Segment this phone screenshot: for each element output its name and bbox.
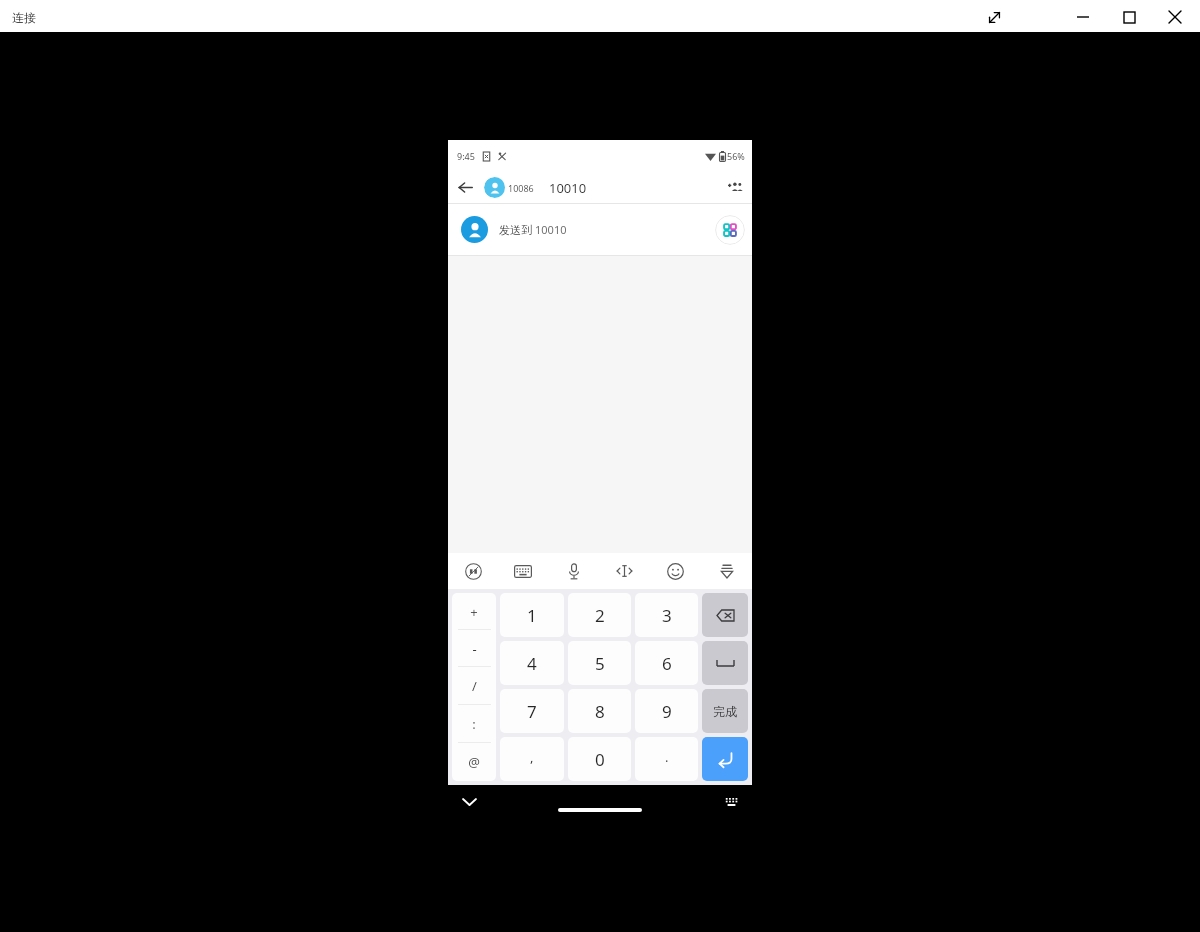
button[interactable]: 2	[568, 593, 631, 637]
button[interactable]: Space	[702, 641, 748, 685]
button[interactable]: 6	[635, 641, 698, 685]
staticText: +	[470, 603, 478, 621]
button[interactable]: Hide keyboard	[701, 553, 752, 589]
button[interactable]: 4	[500, 641, 564, 685]
staticText: 3	[662, 604, 672, 627]
button[interactable]: 0	[568, 737, 631, 781]
staticText: :	[472, 715, 476, 733]
staticText: /	[472, 677, 477, 695]
staticText: 1	[527, 604, 537, 627]
staticText: 0	[595, 748, 605, 771]
button[interactable]: Minimize	[1060, 1, 1106, 33]
staticText: 10010	[549, 179, 587, 197]
button[interactable]: 3	[635, 593, 698, 637]
button[interactable]: -	[452, 630, 496, 667]
staticText: 发送到	[499, 222, 535, 237]
button[interactable]: 发送到	[448, 204, 752, 255]
staticText: 7	[527, 700, 537, 723]
staticText: ,	[530, 748, 534, 766]
button[interactable]: Add contact	[718, 172, 752, 203]
button[interactable]: Back	[448, 172, 482, 203]
staticText: 9:45	[457, 150, 475, 162]
staticText: 完成	[713, 704, 737, 719]
button[interactable]: 1	[500, 593, 564, 637]
button[interactable]: +	[452, 593, 496, 630]
button[interactable]: Keyboard layout	[498, 553, 548, 589]
staticText: 4	[527, 652, 537, 675]
staticText: .	[665, 748, 669, 766]
button[interactable]: .	[635, 737, 698, 781]
button[interactable]: Close	[1152, 1, 1198, 33]
button[interactable]: Enter	[702, 737, 748, 781]
button[interactable]: 7	[500, 689, 564, 733]
button[interactable]: @	[452, 743, 496, 781]
button[interactable]: Collapse keyboard	[456, 789, 482, 815]
staticText: 9	[662, 700, 672, 723]
button[interactable]: 10086	[484, 177, 541, 198]
staticText: 56%	[727, 150, 745, 162]
button[interactable]: 5	[568, 641, 631, 685]
button[interactable]: Backspace	[702, 593, 748, 637]
staticText: 10010	[535, 222, 567, 237]
button[interactable]: Switch keyboard	[718, 789, 744, 815]
staticText: 5	[595, 652, 605, 675]
button[interactable]: /	[452, 667, 496, 705]
button[interactable]: :	[452, 705, 496, 743]
button[interactable]: Expand	[972, 1, 1016, 33]
staticText: 2	[595, 604, 605, 627]
staticText: 8	[595, 700, 605, 723]
button[interactable]: ,	[500, 737, 564, 781]
staticText: -	[472, 640, 477, 658]
staticText: 6	[662, 652, 672, 675]
button[interactable]: 完成	[702, 689, 748, 733]
staticText: @	[468, 753, 480, 771]
button[interactable]: Home	[558, 808, 642, 812]
button[interactable]: Input method	[448, 553, 498, 589]
button[interactable]: 8	[568, 689, 631, 733]
button[interactable]: Emoji	[650, 553, 701, 589]
button[interactable]: Maximize	[1106, 1, 1152, 33]
button[interactable]: 9	[635, 689, 698, 733]
button[interactable]: Cursor move	[599, 553, 650, 589]
button[interactable]: Voice input	[548, 553, 599, 589]
staticText: 连接	[12, 10, 36, 25]
staticText: 10086	[508, 182, 534, 194]
button[interactable]: Apps	[715, 215, 745, 245]
